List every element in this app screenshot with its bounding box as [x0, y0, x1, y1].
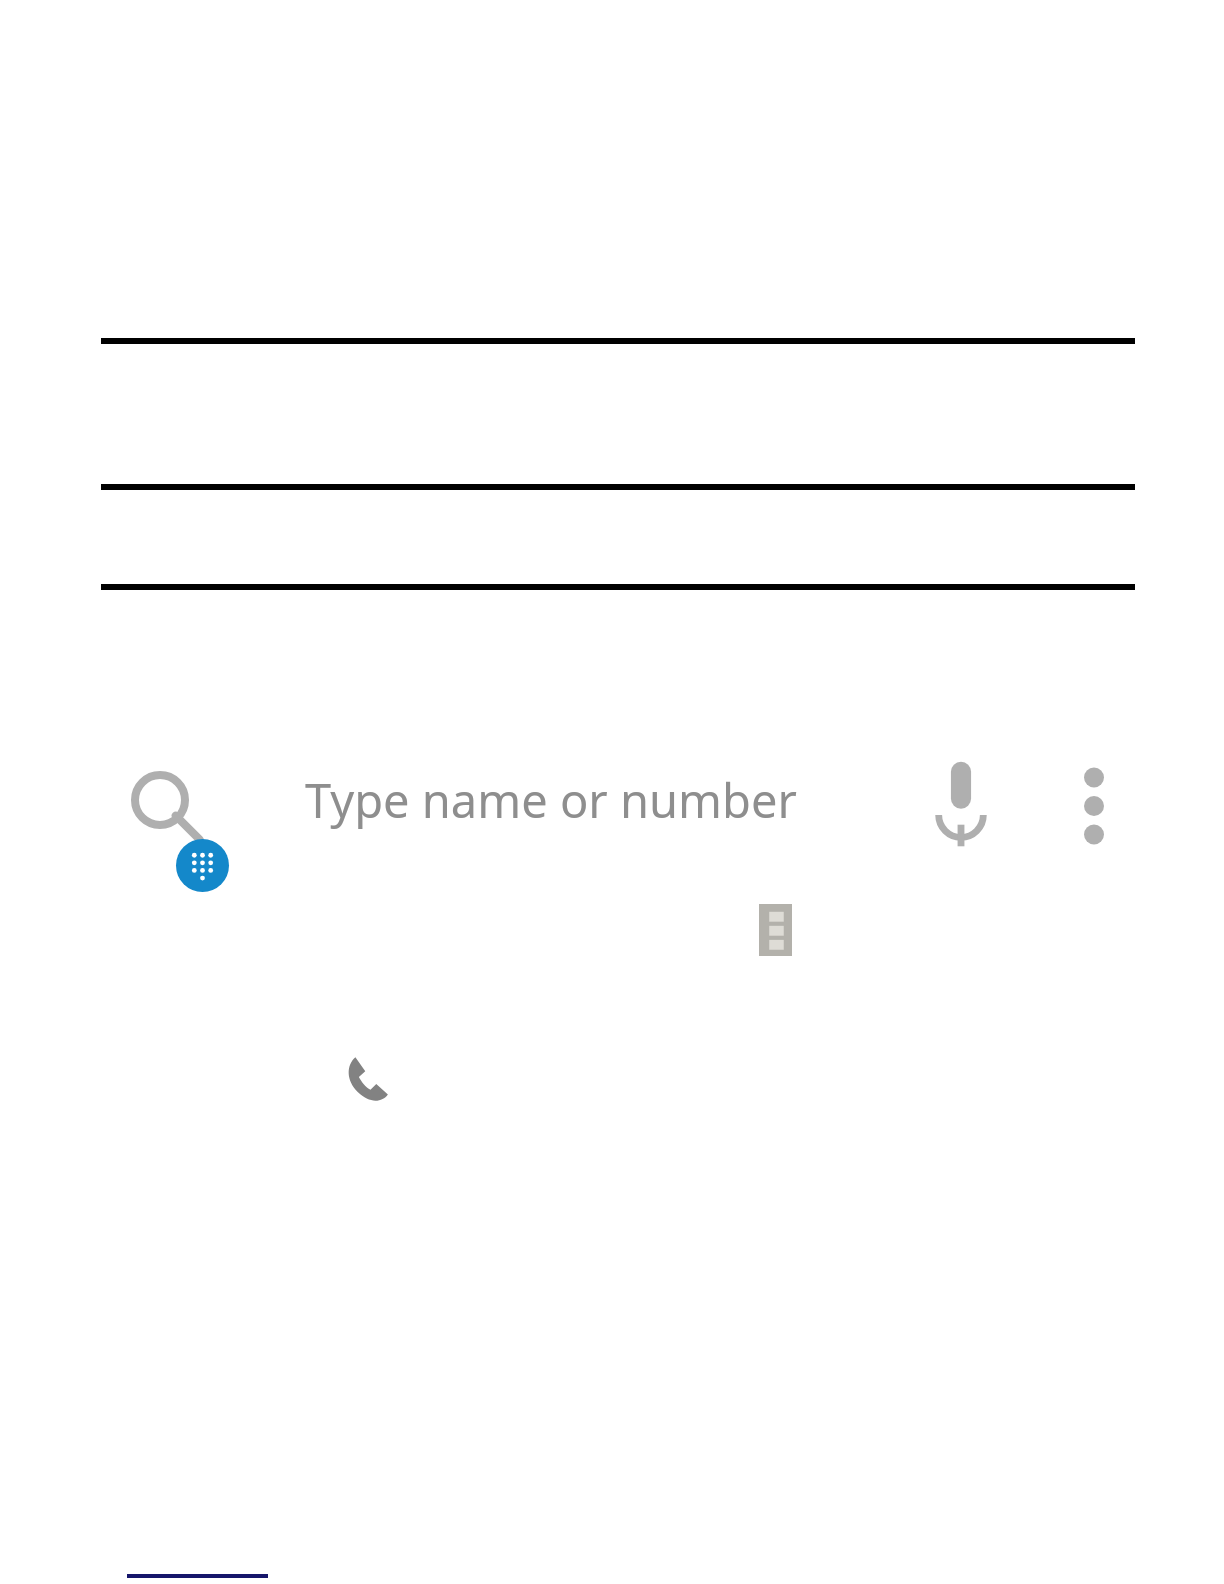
- button[interactable]: More options: [1062, 760, 1126, 852]
- button[interactable]: Voice search: [925, 757, 997, 851]
- button[interactable]: Type name or number: [305, 768, 865, 848]
- button[interactable]: Dial pad: [176, 839, 229, 892]
- button[interactable]: Call: [338, 1048, 396, 1106]
- button[interactable]: Search: [122, 762, 202, 842]
- staticText: Type name or number: [305, 768, 797, 832]
